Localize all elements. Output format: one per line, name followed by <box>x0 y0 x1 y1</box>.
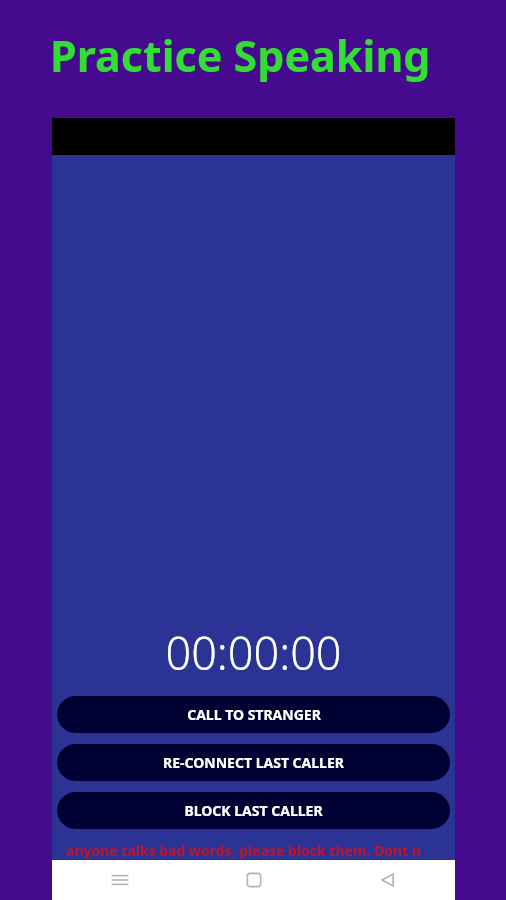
button[interactable]: Recent apps <box>52 860 187 900</box>
staticText: CALL TO STRANGER <box>187 705 321 724</box>
staticText: Practice Speaking <box>50 26 431 85</box>
staticText: 00:00:00 <box>165 622 342 683</box>
staticText: BLOCK LAST CALLER <box>184 801 323 820</box>
button[interactable]: BLOCK LAST CALLER <box>57 792 450 829</box>
button[interactable]: RE-CONNECT LAST CALLER <box>57 744 450 781</box>
button[interactable]: Back <box>321 860 455 900</box>
button[interactable]: CALL TO STRANGER <box>57 696 450 733</box>
button[interactable]: Home <box>187 860 321 900</box>
staticText: anyone talks bad words, please block the… <box>66 841 422 860</box>
staticText: RE-CONNECT LAST CALLER <box>163 753 344 772</box>
